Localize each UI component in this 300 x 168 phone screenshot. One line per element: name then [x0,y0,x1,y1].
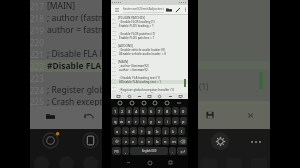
staticText: 219 [30,25,47,36]
button[interactable]: u [156,117,163,125]
button[interactable]: . [169,147,176,155]
button[interactable]: Clock app [42,132,59,149]
button[interactable]: Editor tool [137,94,142,99]
staticText: Enable FLO5 loading = 1 [119,24,154,28]
button[interactable]: l [178,127,185,135]
button[interactable]: Settings [211,132,229,150]
button[interactable]: m [170,137,177,145]
button[interactable]: Enter [177,147,187,155]
button[interactable]: Save [200,107,220,123]
button[interactable]: Editor tool [178,94,183,99]
button[interactable]: Navigation menu [111,5,123,14]
staticText: 3 [128,109,131,114]
staticText: c [141,139,143,144]
staticText: ; Crash exception handler [119,92,156,93]
button[interactable]: Keyboard tool [117,100,123,106]
staticText: 224 [30,85,47,96]
button[interactable]: , [122,147,129,155]
button[interactable]: b [154,137,161,145]
staticText: 207 [112,41,118,44]
button[interactable]: t [140,117,147,125]
button[interactable]: f [138,127,145,135]
button[interactable]: d [130,127,137,135]
staticText: 212 [112,61,118,64]
button[interactable]: Editor tool [168,94,173,99]
button[interactable]: n [162,137,169,145]
button[interactable]: Shift [112,137,121,145]
button[interactable]: Edit [173,5,182,14]
button[interactable]: v [146,137,153,145]
button[interactable]: 6 [148,107,155,115]
button[interactable]: x [130,137,137,145]
button[interactable]: Editor tool [157,94,162,99]
button[interactable]: 9 [172,107,179,115]
button[interactable]: Recent apps [167,159,174,166]
button[interactable]: More [251,141,261,143]
button[interactable]: e [126,117,132,125]
button[interactable]: English (US) [130,147,168,155]
button[interactable]: Open file [164,5,173,14]
button[interactable]: 8 [164,107,171,115]
button[interactable]: Editor tool [116,94,121,99]
staticText: 225 [30,96,47,106]
button[interactable]: Home [146,159,153,166]
button[interactable]: a [114,127,121,135]
staticText: x [132,139,135,144]
button[interactable]: s [122,127,129,135]
button[interactable]: h [154,127,161,135]
staticText: #Disable FLA loading text = 1 [119,80,161,84]
staticText: ; Register global ex [47,84,102,96]
staticText: 8 [166,109,169,114]
button[interactable]: w [119,117,125,125]
button[interactable]: o [172,117,179,125]
button[interactable]: Editor tool [147,94,152,99]
staticText: t [143,119,145,124]
button[interactable]: r [133,117,139,125]
button[interactable]: Collapse keyboard [176,100,182,106]
button[interactable]: 2 [119,107,125,115]
staticText: 217 [112,81,118,84]
button[interactable]: Keyboard tool [164,100,170,106]
staticText: ; Enable FLO5 loading (1) [119,20,155,24]
button[interactable]: g [146,127,153,135]
button[interactable]: q [112,117,118,125]
button[interactable]: 3 [126,107,132,115]
button[interactable]: y [148,117,155,125]
button[interactable]: 1 [112,107,118,115]
button[interactable]: Keyboard tool [152,100,158,106]
button[interactable]: i [164,117,171,125]
staticText: ; Enable vehicle audio loader (0) [119,48,165,52]
button[interactable]: Editor tool [127,94,132,99]
button[interactable]: Backspace [178,137,187,145]
button[interactable]: Device app [82,132,99,149]
button[interactable]: Close [240,107,260,123]
button[interactable]: 0 [180,107,187,115]
button[interactable]: p [180,117,187,125]
button[interactable]: ?!1 [112,147,121,155]
button[interactable]: 7 [156,107,163,115]
staticText: author = fastman92 [119,68,148,72]
button[interactable]: j [162,127,169,135]
button[interactable]: Back [125,159,132,166]
staticText: 218 [30,13,47,24]
button[interactable]: Keyboard tool [129,100,135,106]
staticText: l [181,129,183,134]
button[interactable]: Open folder [39,108,61,125]
staticText: j [165,129,167,134]
button[interactable]: Undo [78,108,100,125]
button[interactable]: More options [182,5,188,14]
button[interactable]: 4 [133,107,139,115]
staticText: d [132,129,135,134]
button[interactable]: c [138,137,145,145]
button[interactable]: 5 [140,107,147,115]
staticText: 214 [112,69,118,72]
button[interactable]: Keyboard tool [141,100,147,106]
button[interactable]: z [122,137,129,145]
button[interactable]: k [170,127,177,135]
